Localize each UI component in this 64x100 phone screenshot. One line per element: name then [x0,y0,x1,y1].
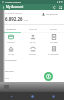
staticText: Info [5,77,9,80]
staticText: Mobile Banking [5,1,22,4]
button[interactable]: e-Statement [43,45,64,57]
button[interactable]: Transfer [0,33,22,45]
button[interactable]: Top up [22,25,43,32]
staticText: Transfer [7,41,15,44]
button[interactable]: Transfer [0,25,22,32]
staticText: Available balance [5,12,23,15]
staticText: My Account [6,5,24,9]
staticText: Payment [50,41,58,44]
button[interactable]: Deposit [22,45,43,57]
button[interactable]: Home [22,92,43,100]
button[interactable]: Other [43,25,64,32]
staticText: Other [50,27,57,30]
staticText: 6,892.26 [5,16,23,22]
button[interactable]: Back [0,92,22,100]
staticText: Top up [29,27,37,30]
button[interactable]: Menu [57,4,63,10]
button[interactable]: My QR [0,45,22,57]
staticText: Promotion [5,59,17,62]
staticText: Top up [29,41,36,44]
staticText: e-Statement [48,53,59,56]
button[interactable]: Payment [43,33,64,45]
button[interactable]: Refresh [51,4,57,10]
staticText: Deposit [29,53,36,56]
button[interactable]: Recents [43,92,64,100]
staticText: My QR [8,53,14,56]
button[interactable]: My account [42,13,64,16]
staticText: Transfer [6,27,16,30]
button[interactable]: Back [0,4,6,10]
staticText: THB [24,19,29,22]
staticText: My account [46,13,58,16]
button[interactable]: Add [44,72,53,81]
button[interactable]: Top up [22,33,43,45]
staticText: Services [5,70,14,73]
